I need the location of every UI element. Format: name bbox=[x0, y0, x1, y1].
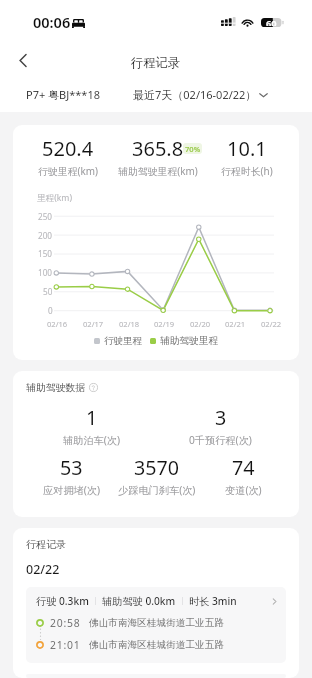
button[interactable]: 辅助驾驶数据 bbox=[26, 381, 98, 393]
staticText: 行程记录 bbox=[26, 538, 67, 551]
staticText: 3 bbox=[215, 404, 227, 431]
staticText: 02/19 bbox=[154, 319, 175, 329]
staticText: 行程时长(h) bbox=[221, 164, 273, 178]
staticText: 20:58 bbox=[50, 616, 81, 630]
staticText: 00:06 bbox=[33, 12, 71, 32]
staticText: 53 bbox=[60, 454, 83, 481]
staticText: 02/20 bbox=[190, 319, 211, 329]
staticText: 200 bbox=[38, 230, 53, 241]
staticText: 365.8 bbox=[132, 135, 184, 162]
staticText: 02/17 bbox=[83, 319, 104, 329]
staticText: 1 bbox=[86, 404, 98, 431]
staticText: 行驶里程(km) bbox=[38, 164, 99, 178]
staticText: 02/16 bbox=[47, 319, 68, 329]
staticText: 50 bbox=[43, 286, 53, 297]
staticText: 74 bbox=[232, 454, 255, 481]
button[interactable]: P7+ 粤BJ***18 bbox=[26, 87, 101, 102]
staticText: 02/22 bbox=[26, 561, 60, 578]
other: Help bbox=[89, 383, 98, 392]
button[interactable]: Back bbox=[10, 47, 37, 74]
staticText: 佛山市南海区桂城街道工业五路 bbox=[89, 639, 224, 651]
staticText: 10.1 bbox=[227, 135, 267, 162]
staticText: 02/21 bbox=[225, 319, 246, 329]
staticText: 21:01 bbox=[50, 638, 81, 652]
button[interactable]: 行驶 0.3km bbox=[26, 587, 286, 663]
staticText: 150 bbox=[38, 248, 53, 259]
staticText: 辅助驾驶数据 bbox=[26, 381, 86, 393]
staticText: 70% bbox=[185, 144, 201, 154]
staticText: 辅助泊车(次) bbox=[63, 433, 121, 447]
staticText: 辅助驾驶里程(km) bbox=[118, 164, 198, 178]
staticText: 佛山市南海区桂城街道工业五路 bbox=[89, 617, 224, 629]
staticText: 行驶 0.3km bbox=[36, 594, 89, 608]
staticText: 02/22 bbox=[261, 319, 282, 329]
staticText: 辅助驾驶里程 bbox=[160, 335, 219, 347]
staticText: 3570 bbox=[134, 454, 180, 481]
staticText: 520.4 bbox=[42, 135, 94, 162]
staticText: 行驶里程 bbox=[104, 335, 142, 347]
staticText: 0千预行程(次) bbox=[189, 433, 252, 447]
staticText: 行程记录 bbox=[131, 55, 181, 70]
button[interactable]: 最近7天（02/16-02/22） bbox=[133, 87, 269, 102]
staticText: 少踩电门刹车(次) bbox=[118, 483, 196, 497]
staticText: 60 bbox=[266, 17, 277, 26]
staticText: 辅助驾驶 0.0km bbox=[102, 594, 176, 608]
staticText: 02/18 bbox=[119, 319, 140, 329]
staticText: 最近7天（02/16-02/22） bbox=[133, 87, 257, 102]
staticText: 应对拥堵(次) bbox=[43, 483, 101, 497]
staticText: 0 bbox=[48, 305, 53, 316]
staticText: 里程(km) bbox=[37, 192, 72, 204]
staticText: 100 bbox=[38, 267, 53, 278]
staticText: 时长 3min bbox=[189, 594, 237, 608]
staticText: 变道(次) bbox=[225, 483, 262, 497]
staticText: 250 bbox=[38, 211, 53, 222]
staticText: P7+ 粤BJ***18 bbox=[26, 87, 101, 102]
